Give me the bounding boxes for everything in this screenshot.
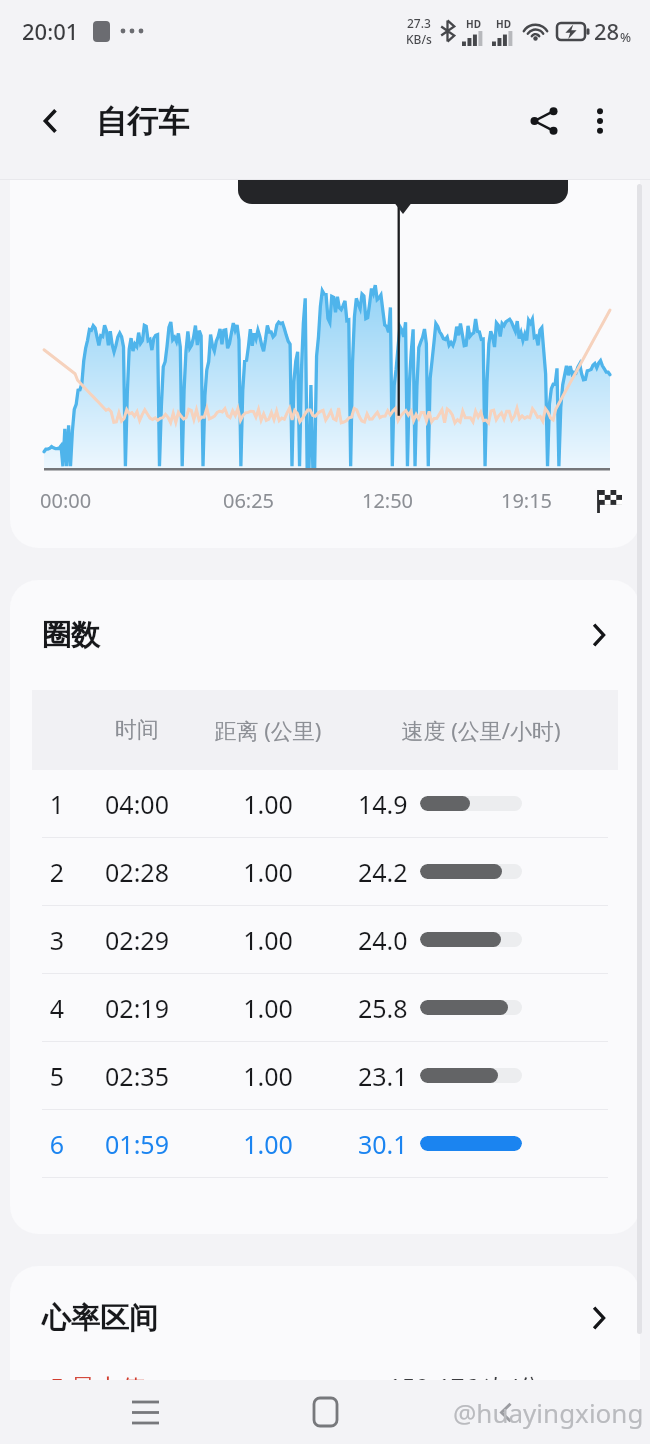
staticText: 时间 [82,716,192,744]
staticText: 1.00 [192,991,344,1025]
staticText: 1 [32,787,82,821]
button[interactable]: Back [26,96,76,146]
staticText: 1.00 [192,1059,344,1093]
button[interactable]: 圈数 [10,580,640,690]
staticText: 24.0 [358,923,408,957]
staticText: 02:29 [82,923,192,957]
button[interactable]: 6 [10,1110,640,1177]
staticText: 23.1 [358,1059,408,1093]
staticText: 159-176 次/分 [388,1370,542,1380]
staticText: 27.3 [407,15,431,31]
button[interactable]: More options [572,93,628,149]
staticText: 24.2 [358,855,408,889]
staticText: 3 [32,923,82,957]
staticText: 12:50 [318,487,457,514]
staticText: 2 [32,855,82,889]
staticText: 28 [594,16,620,46]
staticText: 01:59 [82,1127,192,1161]
staticText: 1.00 [192,787,344,821]
staticText: 5 [32,1059,82,1093]
staticText: 1.00 [192,923,344,957]
button[interactable]: 5 [10,1042,640,1109]
staticText: KB/s [406,31,432,47]
staticText: 1.00 [192,855,344,889]
staticText: 25.8 [358,991,408,1025]
staticText: 06:25 [179,487,318,514]
staticText: 距离 (公里) [192,715,344,745]
staticText: 心率区间 [42,1300,158,1337]
staticText: 4 [32,991,82,1025]
staticText: % [620,28,632,46]
button[interactable]: 1 [10,770,640,837]
button[interactable]: 2 [10,838,640,905]
staticText: 02:35 [82,1059,192,1093]
staticText: 30.1 [358,1127,408,1161]
staticText: HD [496,17,511,31]
staticText: @huayingxiong [453,1395,644,1430]
staticText: 1.00 [192,1127,344,1161]
staticText: 04:00 [82,787,192,821]
staticText: 速度 (公里/小时) [344,715,618,745]
staticText: 圈数 [42,617,100,654]
staticText: 20:01 [22,16,79,46]
staticText: 19:15 [457,487,596,514]
button[interactable]: 4 [10,974,640,1041]
button[interactable]: Recent apps [109,1380,181,1444]
button[interactable]: Home [289,1380,361,1444]
staticText: 5 最大值 [50,1370,146,1380]
button[interactable]: 心率区间 [10,1266,640,1370]
button[interactable]: Back [470,1380,542,1444]
staticText: 02:19 [82,991,192,1025]
staticText: HD [466,17,481,31]
button[interactable]: Share [516,93,572,149]
staticText: 00:00 [40,487,179,514]
staticText: 14.9 [358,787,408,821]
button[interactable]: 3 [10,906,640,973]
staticText: 6 [32,1127,82,1161]
staticText: 自行车 [96,102,189,141]
staticText: 02:28 [82,855,192,889]
